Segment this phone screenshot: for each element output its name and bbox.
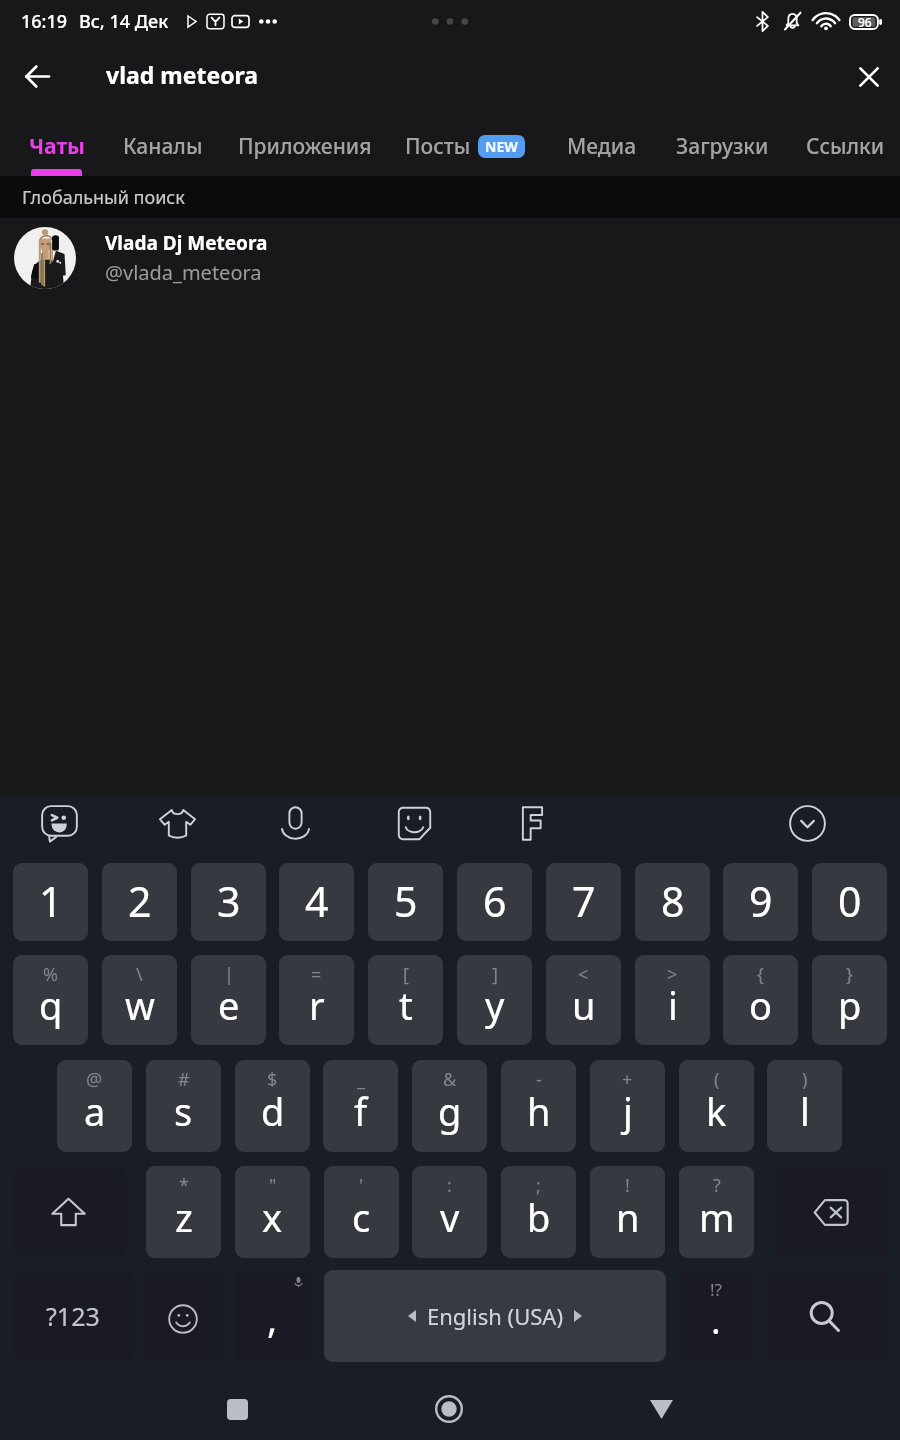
button[interactable]: @ xyxy=(57,1060,132,1152)
button[interactable]: 5 xyxy=(368,863,443,941)
staticText: , xyxy=(267,1292,278,1344)
button[interactable]: Back xyxy=(11,51,62,102)
button[interactable]: 9 xyxy=(723,863,798,941)
button[interactable]: ) xyxy=(767,1060,842,1152)
button[interactable]: [ xyxy=(368,955,443,1045)
button[interactable]: Shift xyxy=(13,1166,124,1258)
staticText: vlad meteora xyxy=(106,59,259,90)
button[interactable]: 7 xyxy=(546,863,621,941)
staticText: r xyxy=(309,979,325,1031)
button[interactable]: Чаты xyxy=(17,110,96,176)
button[interactable]: 8 xyxy=(635,863,710,941)
button[interactable]: * xyxy=(146,1166,221,1258)
button[interactable]: 3 xyxy=(191,863,266,941)
button[interactable]: Home xyxy=(419,1379,479,1439)
button[interactable]: # xyxy=(146,1060,221,1152)
staticText: Посты xyxy=(405,132,471,161)
button[interactable]: Close xyxy=(843,51,894,102)
staticText: 8 xyxy=(661,873,685,929)
staticText: 6 xyxy=(483,873,507,929)
button[interactable]: ! xyxy=(590,1166,665,1258)
staticText: ( xyxy=(714,1067,720,1092)
staticText: Чаты xyxy=(29,132,85,161)
button[interactable]: 1 xyxy=(13,863,88,941)
button[interactable]: Translate xyxy=(514,805,551,842)
staticText: e xyxy=(218,979,240,1031)
staticText: Приложения xyxy=(238,132,372,161)
button[interactable]: ? xyxy=(679,1166,754,1258)
button[interactable]: > xyxy=(635,955,710,1045)
button[interactable]: & xyxy=(412,1060,487,1152)
staticText: Медиа xyxy=(567,132,637,161)
button[interactable]: !? xyxy=(678,1270,754,1362)
staticText: q xyxy=(39,979,63,1031)
button[interactable]: : xyxy=(412,1166,487,1258)
staticText: p xyxy=(838,979,862,1031)
staticText: b xyxy=(527,1191,551,1243)
staticText: l xyxy=(800,1085,810,1137)
staticText: m xyxy=(699,1191,735,1243)
button[interactable]: } xyxy=(812,955,887,1045)
button[interactable]: ( xyxy=(679,1060,754,1152)
button[interactable]: ] xyxy=(457,955,532,1045)
staticText: a xyxy=(84,1085,106,1137)
staticText: ?123 xyxy=(46,1299,100,1333)
button[interactable]: Backspace xyxy=(775,1166,887,1258)
staticText: - xyxy=(536,1067,542,1092)
staticText: ; xyxy=(536,1173,541,1198)
button[interactable]: , xyxy=(235,1270,310,1362)
button[interactable]: Recent apps xyxy=(207,1379,267,1439)
button[interactable]: ' xyxy=(324,1166,399,1258)
staticText: * xyxy=(179,1173,189,1198)
button[interactable]: = xyxy=(279,955,354,1045)
button[interactable]: Voice input xyxy=(277,805,314,842)
button[interactable]: Collapse keyboard xyxy=(789,805,826,842)
button[interactable]: GIF xyxy=(396,805,433,842)
staticText: | xyxy=(224,962,234,987)
staticText: f xyxy=(354,1085,368,1137)
button[interactable]: Приложения xyxy=(229,110,381,176)
staticText: NEW xyxy=(485,137,518,156)
staticText: n xyxy=(616,1191,640,1243)
button[interactable]: | xyxy=(191,955,266,1045)
button[interactable]: English (USA) xyxy=(324,1270,666,1362)
staticText: 7 xyxy=(572,873,596,929)
staticText: = xyxy=(311,962,322,987)
button[interactable]: ; xyxy=(501,1166,576,1258)
button[interactable]: Загрузки xyxy=(664,110,781,176)
button[interactable]: 0 xyxy=(812,863,887,941)
staticText: ? xyxy=(713,1173,721,1198)
button[interactable]: Back xyxy=(631,1379,691,1439)
button[interactable]: \ xyxy=(102,955,177,1045)
staticText: t xyxy=(399,979,413,1031)
button[interactable]: " xyxy=(235,1166,310,1258)
button[interactable]: Vlada Dj Meteora xyxy=(0,218,900,310)
button[interactable]: Каналы xyxy=(105,110,221,176)
button[interactable]: ?123 xyxy=(13,1270,132,1362)
button[interactable]: - xyxy=(501,1060,576,1152)
button[interactable]: Ссылки xyxy=(794,110,896,176)
button[interactable]: 2 xyxy=(102,863,177,941)
button[interactable]: Посты xyxy=(394,110,482,176)
button[interactable]: _ xyxy=(323,1060,398,1152)
button[interactable]: Медиа xyxy=(555,110,649,176)
staticText: ) xyxy=(802,1067,808,1092)
button[interactable]: Search xyxy=(766,1270,887,1362)
staticText: 5 xyxy=(394,873,418,929)
staticText: k xyxy=(706,1085,727,1137)
button[interactable]: { xyxy=(723,955,798,1045)
button[interactable]: Stickers xyxy=(159,805,196,842)
button[interactable]: % xyxy=(13,955,88,1045)
staticText: @ xyxy=(86,1067,103,1092)
button[interactable]: 4 xyxy=(279,863,354,941)
button[interactable]: + xyxy=(590,1060,665,1152)
staticText: d xyxy=(261,1085,285,1137)
button[interactable]: 6 xyxy=(457,863,532,941)
button[interactable]: Emoji xyxy=(143,1270,222,1362)
staticText: h xyxy=(527,1085,551,1137)
button[interactable]: Emoji xyxy=(41,805,78,842)
staticText: # xyxy=(178,1067,190,1092)
staticText: Ссылки xyxy=(806,132,885,161)
button[interactable]: $ xyxy=(235,1060,310,1152)
button[interactable]: < xyxy=(546,955,621,1045)
